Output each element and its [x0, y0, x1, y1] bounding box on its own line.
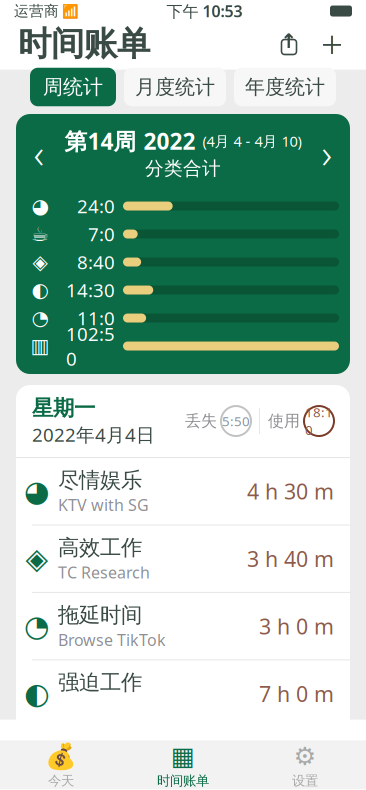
staticText: 周统计 — [43, 75, 103, 99]
button[interactable]: ◐ — [16, 660, 350, 727]
staticText: TC Research — [58, 562, 150, 583]
staticText: 尽情娱乐 — [58, 467, 142, 493]
staticText: 102:50 — [66, 321, 115, 371]
staticText: ↑ — [280, 30, 297, 52]
staticText: 5:50 — [222, 412, 250, 430]
staticText: 💰 — [45, 742, 77, 771]
button[interactable]: 💰 — [0, 742, 122, 788]
button[interactable]: ◔ — [16, 593, 350, 660]
button[interactable]: ▦ — [122, 742, 244, 788]
button[interactable]: ◕ — [16, 458, 350, 525]
staticText: 2022年4月4日 — [32, 422, 155, 447]
staticText: Browse TikTok — [58, 629, 166, 650]
staticText: 24:0 — [77, 194, 115, 218]
button[interactable]: 分享 — [272, 27, 306, 61]
staticText: › — [321, 126, 332, 180]
staticText: 3 h 40 m — [247, 544, 334, 573]
staticText: ◕ — [24, 475, 50, 508]
button[interactable]: 年度统计 — [234, 68, 336, 106]
staticText: ◕ — [31, 195, 48, 217]
staticText: 时间账单 — [18, 23, 150, 64]
staticText: ☕︎ — [31, 223, 49, 245]
staticText: 分类合计 — [145, 157, 221, 180]
staticText: ◈ — [32, 251, 47, 273]
staticText: 11:0 — [77, 306, 115, 330]
staticText: 7 h 0 m — [259, 679, 334, 708]
button[interactable]: 添加 — [316, 27, 348, 61]
staticText: KTV with SG — [58, 494, 149, 515]
staticText: 下午 10:53 — [166, 0, 242, 22]
staticText: ⚙ — [293, 742, 316, 771]
button[interactable]: 上一周 — [22, 133, 56, 173]
staticText: ◐ — [24, 677, 50, 710]
staticText: 2022 — [143, 126, 195, 156]
staticText: (4月 4 - 4月 10) — [202, 131, 301, 151]
staticText: 丢失 — [185, 411, 217, 431]
staticText: 8:40 — [77, 250, 115, 274]
staticText: 使用 — [268, 411, 300, 431]
staticText: ◐ — [31, 279, 48, 301]
staticText: 强迫工作 — [58, 669, 142, 696]
staticText: ◔ — [24, 609, 50, 643]
staticText: 14:30 — [66, 278, 115, 302]
staticText: 18:10 — [305, 403, 333, 439]
button[interactable]: ◈ — [16, 525, 350, 593]
button[interactable]: ⚙ — [244, 742, 366, 788]
button[interactable]: 周统计 — [30, 68, 116, 106]
staticText: 4 h 30 m — [247, 477, 334, 505]
staticText: 月度统计 — [135, 75, 215, 99]
staticText: 3 h 0 m — [259, 612, 334, 640]
staticText: 高效工作 — [58, 534, 142, 561]
staticText: 拖延时间 — [58, 602, 142, 628]
staticText: + — [321, 18, 343, 70]
staticText: 今天 — [48, 773, 74, 789]
staticText: 📶 — [59, 2, 79, 20]
staticText: ▦ — [171, 742, 195, 771]
button[interactable]: 月度统计 — [124, 68, 226, 106]
staticText: ◔ — [31, 307, 48, 329]
staticText: ‹ — [33, 126, 44, 180]
staticText: ◈ — [25, 542, 48, 575]
staticText: 运营商 — [14, 2, 59, 20]
staticText: 星期一 — [32, 395, 95, 421]
staticText: 设置 — [292, 772, 318, 789]
staticText: 第14周 — [64, 126, 136, 156]
staticText: ▥ — [30, 335, 49, 357]
button[interactable]: 下一周 — [310, 133, 344, 173]
staticText: 时间账单 — [157, 772, 209, 789]
staticText: 年度统计 — [245, 75, 325, 99]
staticText: 7:0 — [88, 222, 115, 246]
